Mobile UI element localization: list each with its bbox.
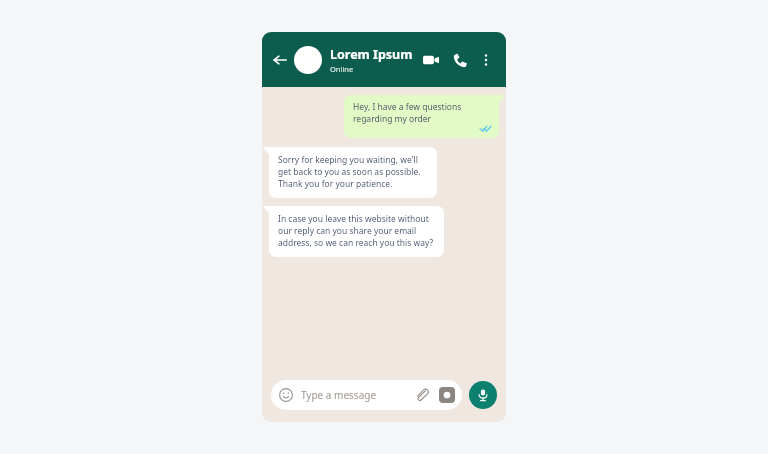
button[interactable]: Profile photo	[294, 46, 322, 74]
staticText: Hey, I have a few questions regarding my…	[353, 101, 491, 125]
staticText: In case you leave this website without o…	[278, 213, 436, 249]
button[interactable]: Voice call	[448, 48, 472, 72]
button[interactable]: Sorry for keeping you waiting, we'll get…	[269, 147, 437, 198]
button[interactable]: Emoji	[271, 380, 462, 410]
button[interactable]: Lorem Ipsum	[330, 46, 419, 74]
staticText: Online	[330, 64, 354, 74]
staticText: Lorem Ipsum	[330, 46, 413, 63]
button[interactable]: Back	[270, 50, 290, 70]
button[interactable]: Emoji	[278, 387, 294, 403]
staticText: Sorry for keeping you waiting, we'll get…	[278, 154, 429, 190]
button[interactable]: In case you leave this website without o…	[269, 206, 444, 257]
button[interactable]: Hey, I have a few questions regarding my…	[344, 95, 499, 138]
button[interactable]: Video call	[419, 48, 443, 72]
button[interactable]: More options	[475, 49, 497, 71]
button[interactable]: Voice message	[469, 381, 497, 409]
button[interactable]: Camera	[439, 387, 455, 403]
staticText: Type a message	[301, 388, 413, 402]
button[interactable]: Attach file	[413, 386, 431, 404]
